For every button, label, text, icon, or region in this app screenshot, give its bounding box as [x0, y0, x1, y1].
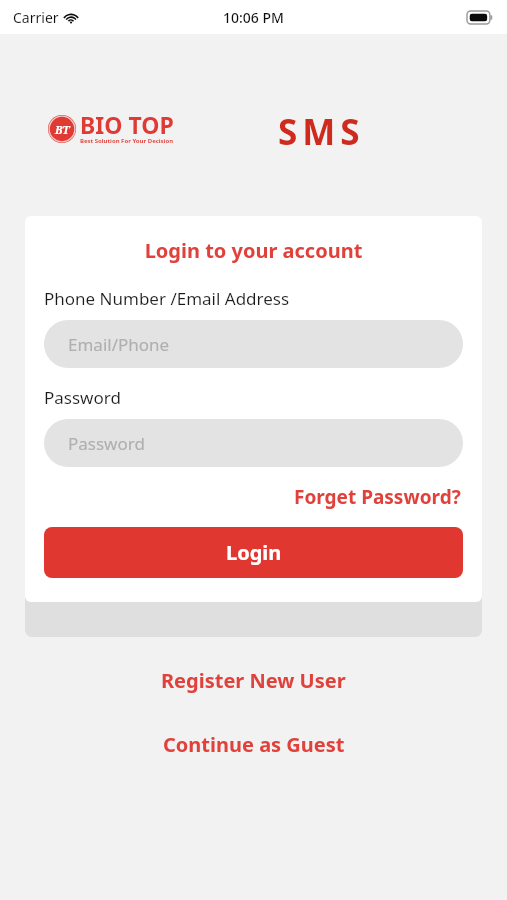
staticText: Register New User — [161, 667, 346, 694]
staticText: 10:06 PM — [223, 8, 284, 27]
staticText: Forget Password? — [294, 484, 461, 510]
staticText: Login to your account — [44, 237, 463, 264]
button[interactable]: Continue as Guest — [155, 727, 353, 762]
staticText: Phone Number /Email Address — [44, 287, 290, 310]
staticText: Email/Phone — [68, 333, 170, 356]
staticText: Login — [226, 539, 282, 566]
staticText: Carrier — [13, 8, 59, 27]
button[interactable]: Forget Password? — [292, 482, 463, 512]
staticText: Password — [68, 432, 145, 455]
staticText: Password — [44, 386, 121, 409]
staticText: SMS — [278, 108, 365, 148]
staticText: Continue as Guest — [163, 731, 345, 758]
staticText: Best Solution For Your Decision — [80, 137, 174, 145]
staticText: BT — [55, 122, 70, 137]
button[interactable]: Register New User — [153, 663, 354, 698]
button[interactable]: Password — [44, 419, 463, 467]
button[interactable]: Login — [44, 527, 463, 578]
button[interactable]: Email/Phone — [44, 320, 463, 368]
staticText: BIO TOP — [80, 109, 174, 140]
